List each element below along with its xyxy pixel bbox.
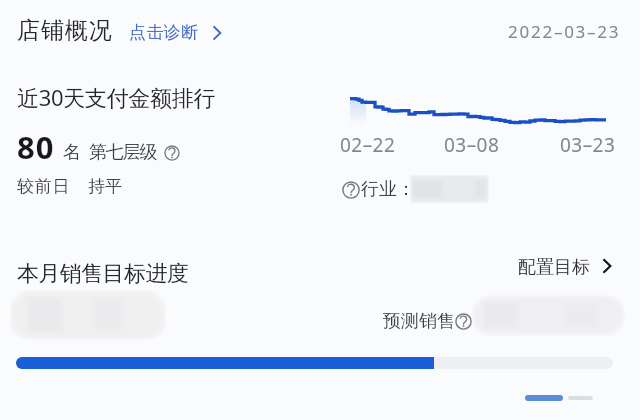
staticText: 点击诊断 xyxy=(129,22,199,43)
staticText: 03–08 xyxy=(444,132,500,158)
staticText: 近30天支付金额排行 xyxy=(17,82,216,112)
staticText: 预测销售 xyxy=(383,310,455,333)
staticText: 第七层级 xyxy=(89,141,157,164)
staticText: 2022–03–23 xyxy=(508,20,621,43)
staticText: 03–23 xyxy=(560,132,616,158)
button[interactable]: 第 1 页 xyxy=(525,395,563,401)
button[interactable]: 第 2 页 xyxy=(568,396,593,400)
staticText: 80 xyxy=(17,126,55,168)
staticText: 本月销售目标进度 xyxy=(17,260,189,288)
staticText: 店铺概况 xyxy=(17,16,113,45)
staticText: 持平 xyxy=(88,176,122,197)
button[interactable]: 配置目标 xyxy=(512,252,620,283)
button[interactable]: 点击诊断 xyxy=(123,19,230,46)
staticText: 行业： xyxy=(361,178,415,201)
staticText: 02–22 xyxy=(340,132,396,158)
staticText: 较前日 xyxy=(17,176,71,197)
staticText: 名 xyxy=(63,141,81,164)
button[interactable]: 关于层级的说明 xyxy=(164,145,180,161)
button[interactable]: 预测销售 xyxy=(383,310,472,333)
button[interactable]: 行业： xyxy=(342,178,415,201)
staticText: 配置目标 xyxy=(518,256,590,279)
